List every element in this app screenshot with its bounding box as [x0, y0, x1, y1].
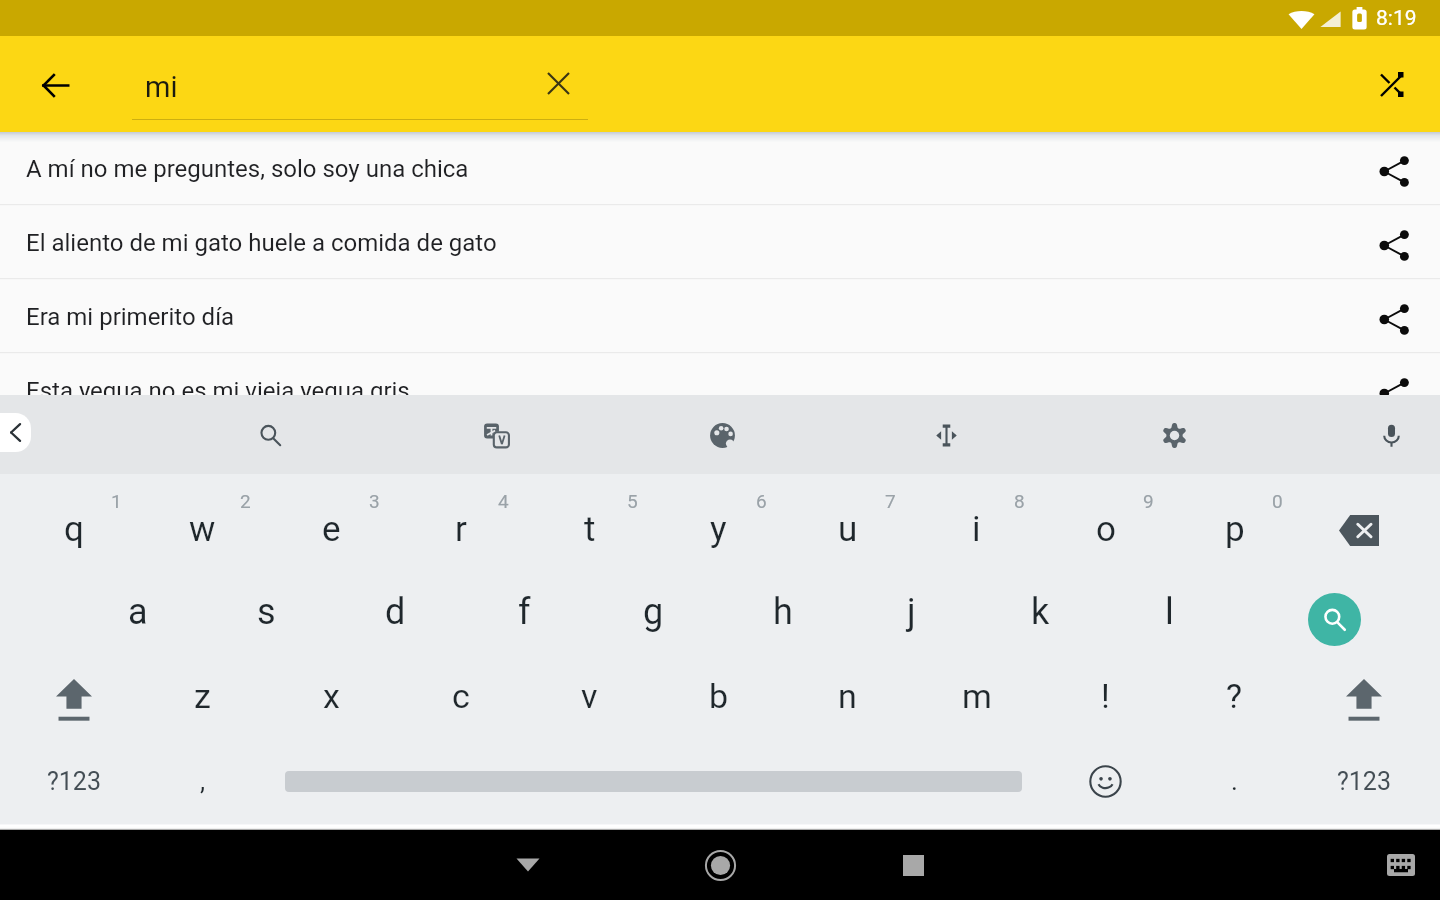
button[interactable]: Shuffle — [1361, 53, 1423, 115]
button[interactable]: Share — [1367, 366, 1421, 420]
button[interactable]: n — [783, 655, 912, 737]
button[interactable]: Expand toolbar — [0, 413, 31, 452]
staticText: El aliento de mi gato huele a comida de … — [26, 229, 497, 257]
button[interactable]: e — [267, 489, 396, 571]
staticText: n — [838, 676, 857, 716]
staticText: f — [518, 591, 531, 633]
staticText: ?123 — [47, 767, 101, 796]
button[interactable]: h — [718, 571, 847, 653]
button[interactable]: j — [847, 571, 976, 653]
staticText: b — [709, 676, 729, 716]
staticText: p — [1225, 509, 1245, 550]
button[interactable]: Hide keyboard — [500, 837, 556, 893]
button[interactable]: Shift — [9, 655, 138, 737]
button[interactable]: r — [396, 489, 525, 571]
staticText: c — [452, 676, 470, 716]
button[interactable]: Emoji — [1041, 740, 1170, 822]
button[interactable]: Backspace — [1289, 489, 1429, 571]
button[interactable]: . — [1170, 740, 1299, 822]
button[interactable]: o — [1041, 489, 1170, 571]
button[interactable]: f — [460, 571, 589, 653]
button[interactable]: m — [912, 655, 1041, 737]
staticText: d — [385, 591, 406, 633]
staticText: w — [189, 509, 216, 550]
button[interactable]: t — [525, 489, 654, 571]
staticText: 8:19 — [1376, 6, 1417, 31]
staticText: k — [1031, 591, 1050, 633]
button[interactable]: y — [654, 489, 783, 571]
button[interactable]: Shift — [1299, 655, 1428, 737]
button[interactable]: p — [1170, 489, 1299, 571]
staticText: ? — [1226, 676, 1243, 716]
button[interactable]: ?123 — [9, 740, 138, 822]
button[interactable]: Settings — [1147, 408, 1201, 462]
staticText: y — [710, 509, 727, 550]
button[interactable]: ?123 — [1299, 740, 1428, 822]
button[interactable]: El aliento de mi gato huele a comida de … — [0, 206, 1440, 280]
button[interactable]: Esta yegua no es mi vieja yegua gris — [0, 354, 1440, 428]
button[interactable]: z — [138, 655, 267, 737]
button[interactable]: q — [9, 489, 138, 571]
staticText: j — [907, 591, 916, 633]
staticText: mi — [145, 70, 178, 104]
button[interactable]: Themes — [695, 408, 749, 462]
button[interactable]: d — [331, 571, 460, 653]
staticText: 2 — [240, 490, 251, 512]
button[interactable]: u — [783, 489, 912, 571]
staticText: 9 — [1143, 490, 1154, 512]
staticText: l — [1165, 591, 1174, 633]
button[interactable]: ! — [1041, 655, 1170, 737]
button[interactable]: i — [912, 489, 1041, 571]
button[interactable]: Text editing — [919, 408, 973, 462]
button[interactable]: l — [1105, 571, 1234, 653]
button[interactable]: , — [138, 740, 267, 822]
staticText: h — [773, 591, 793, 633]
staticText: i — [972, 509, 981, 550]
button[interactable]: Clear query — [532, 57, 584, 109]
button[interactable]: Translate — [469, 408, 523, 462]
staticText: Esta yegua no es mi vieja yegua gris — [26, 377, 410, 405]
staticText: q — [64, 509, 84, 550]
button[interactable]: ? — [1170, 655, 1299, 737]
button[interactable]: a — [73, 571, 202, 653]
button[interactable]: g — [589, 571, 718, 653]
staticText: o — [1096, 509, 1116, 550]
staticText: g — [643, 591, 664, 633]
staticText: 4 — [498, 490, 509, 512]
staticText: u — [838, 509, 858, 550]
staticText: 5 — [627, 490, 638, 512]
button[interactable]: Era mi primerito día — [0, 280, 1440, 354]
staticText: , — [200, 766, 206, 796]
button[interactable]: Share — [1367, 144, 1421, 198]
staticText: 1 — [111, 490, 122, 512]
button[interactable]: w — [138, 489, 267, 571]
button[interactable]: Space — [265, 740, 1041, 822]
button[interactable]: Voice input — [1364, 408, 1418, 462]
button[interactable]: Home — [692, 837, 748, 893]
button[interactable]: Recent apps — [885, 837, 941, 893]
staticText: a — [128, 591, 148, 633]
staticText: 8 — [1014, 490, 1025, 512]
button[interactable]: A mí no me preguntes, solo soy una chica — [0, 132, 1440, 206]
button[interactable]: x — [267, 655, 396, 737]
button[interactable]: Share — [1367, 218, 1421, 272]
button[interactable]: k — [976, 571, 1105, 653]
button[interactable]: Switch keyboard — [1377, 841, 1425, 889]
button[interactable]: Back — [23, 53, 87, 117]
button[interactable]: Share — [1367, 292, 1421, 346]
button[interactable]: b — [654, 655, 783, 737]
button[interactable]: v — [525, 655, 654, 737]
button[interactable]: s — [202, 571, 331, 653]
staticText: ! — [1101, 676, 1110, 716]
button[interactable]: Search — [1259, 571, 1409, 653]
staticText: Era mi primerito día — [26, 303, 235, 331]
staticText: e — [322, 509, 341, 550]
staticText: v — [581, 676, 598, 716]
button[interactable]: c — [396, 655, 525, 737]
button[interactable]: Search — [243, 408, 297, 462]
staticText: 0 — [1272, 490, 1283, 512]
staticText: 6 — [756, 490, 767, 512]
staticText: . — [1231, 766, 1238, 796]
staticText: t — [584, 509, 596, 550]
staticText: s — [257, 591, 276, 633]
